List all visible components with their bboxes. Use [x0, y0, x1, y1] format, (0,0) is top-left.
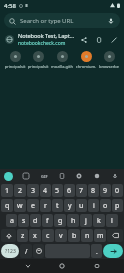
button[interactable]: m — [94, 229, 106, 242]
staticText: j — [85, 216, 87, 226]
button[interactable]: q — [1, 199, 13, 212]
button[interactable]: Search — [4, 13, 120, 28]
staticText: Search or type URL — [20, 17, 74, 25]
button[interactable]: browserben… — [98, 51, 120, 69]
button[interactable]: o — [100, 199, 111, 212]
button[interactable]: Edit — [108, 34, 119, 45]
button[interactable]: j — [80, 214, 92, 227]
button[interactable]: v — [55, 229, 67, 242]
button[interactable]: p — [112, 199, 123, 212]
staticText: mozilla.gith… — [51, 64, 73, 69]
other: Search — [9, 18, 16, 25]
button[interactable]: principalsit… — [27, 51, 49, 69]
staticText: m — [97, 231, 104, 241]
button[interactable]: Settings — [74, 171, 84, 181]
button[interactable]: i — [88, 199, 99, 212]
button[interactable]: f — [42, 214, 53, 227]
button[interactable]: ?123 — [1, 244, 19, 258]
button[interactable]: y — [64, 199, 75, 212]
button[interactable]: Shift — [1, 229, 16, 242]
button[interactable]: Emoji — [92, 171, 102, 181]
button[interactable]: / — [20, 244, 32, 258]
button[interactable]: mozilla.gith… — [51, 51, 73, 69]
button[interactable]: Home — [55, 259, 69, 273]
button[interactable]: principalsit… — [4, 51, 26, 69]
staticText: b — [72, 231, 77, 241]
staticText: / — [25, 247, 28, 256]
staticText: f — [46, 216, 49, 226]
button[interactable]: z — [17, 229, 28, 242]
button[interactable]: Emoji — [33, 244, 44, 258]
staticText: . — [96, 247, 98, 256]
button[interactable]: n — [81, 229, 93, 242]
button[interactable]: l — [106, 214, 118, 227]
staticText: i — [93, 201, 95, 211]
staticText: o — [103, 201, 108, 211]
button[interactable]: 5 — [52, 184, 63, 197]
button[interactable]: 7 — [76, 184, 87, 197]
button[interactable]: 0 — [112, 184, 123, 197]
button[interactable]: 3 — [27, 184, 39, 197]
button[interactable]: w — [14, 199, 26, 212]
button[interactable]: Backspace — [107, 229, 123, 242]
staticText: l — [111, 216, 113, 226]
button[interactable]: GIF — [39, 171, 49, 181]
button[interactable]: 2 — [14, 184, 26, 197]
staticText: v — [59, 231, 63, 241]
staticText: g — [58, 216, 63, 226]
staticText: q — [5, 201, 10, 211]
staticText: s — [22, 216, 26, 226]
button[interactable]: Copy — [93, 34, 104, 45]
staticText: u — [79, 201, 84, 211]
staticText: 4 — [43, 186, 48, 196]
staticText: 7 — [79, 186, 84, 196]
staticText: 6 — [67, 186, 72, 196]
button[interactable]: e — [27, 199, 39, 212]
staticText: a — [10, 216, 14, 226]
staticText: r — [44, 201, 47, 211]
button[interactable]: chromium.… — [75, 51, 97, 69]
staticText: 8 — [91, 186, 96, 196]
staticText: x — [33, 231, 37, 241]
button[interactable]: Stickers — [21, 171, 31, 181]
button[interactable]: a — [6, 214, 17, 227]
button[interactable]: Share — [78, 34, 89, 45]
button[interactable]: 9 — [100, 184, 111, 197]
button[interactable]: h — [67, 214, 79, 227]
button[interactable]: t — [52, 199, 63, 212]
staticText: ?123 — [5, 248, 16, 255]
button[interactable]: Notebook Test, Laptop Test … — [5, 30, 119, 48]
staticText: 0 — [115, 186, 120, 196]
button[interactable]: 1 — [1, 184, 13, 197]
staticText: Notebook Test, Laptop Test … — [18, 32, 75, 39]
button[interactable]: Go — [103, 244, 123, 258]
button[interactable]: 6 — [64, 184, 75, 197]
button[interactable]: . — [91, 244, 102, 258]
button[interactable]: Recents — [90, 259, 104, 273]
staticText: 5 — [55, 186, 60, 196]
button[interactable]: s — [18, 214, 29, 227]
button[interactable]: r — [40, 199, 51, 212]
staticText: browserben… — [98, 64, 120, 69]
staticText: z — [21, 231, 25, 241]
button[interactable]: Clipboard — [57, 171, 67, 181]
button[interactable]: d — [30, 214, 41, 227]
staticText: 4:58 — [4, 2, 16, 10]
staticText: 3 — [31, 186, 36, 196]
staticText: y — [68, 201, 72, 211]
button[interactable]: Google — [4, 172, 13, 181]
button[interactable]: Voice input — [110, 171, 120, 181]
button[interactable]: Back — [21, 259, 35, 273]
button[interactable]: 8 — [88, 184, 99, 197]
staticText: notebookcheck.com — [18, 40, 66, 47]
button[interactable]: g — [54, 214, 66, 227]
button[interactable]: u — [76, 199, 87, 212]
staticText: p — [115, 201, 120, 211]
button[interactable]: b — [68, 229, 80, 242]
button[interactable]: k — [93, 214, 105, 227]
button[interactable]: c — [42, 229, 54, 242]
staticText: c — [46, 231, 50, 241]
button[interactable]: x — [29, 229, 41, 242]
button[interactable]: 4 — [40, 184, 51, 197]
